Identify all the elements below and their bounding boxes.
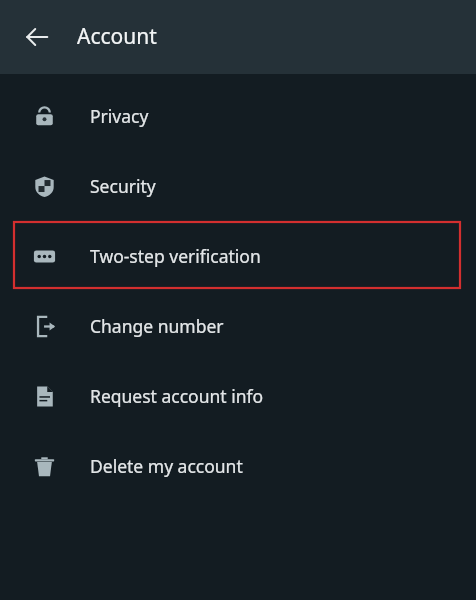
staticText: Security <box>90 174 156 198</box>
button[interactable]: Privacy <box>0 81 476 151</box>
staticText: Delete my account <box>90 454 243 478</box>
button[interactable]: Back <box>14 14 60 60</box>
staticText: Request account info <box>90 384 264 408</box>
staticText: Privacy <box>90 104 149 128</box>
button[interactable]: Request account info <box>0 361 476 431</box>
button[interactable]: Two-step verification <box>0 221 476 291</box>
button[interactable]: Change number <box>0 291 476 361</box>
staticText: Change number <box>90 314 224 338</box>
button[interactable]: Security <box>0 151 476 221</box>
button[interactable]: Delete my account <box>0 431 476 501</box>
staticText: Account <box>77 22 157 51</box>
staticText: Two-step verification <box>90 244 261 268</box>
